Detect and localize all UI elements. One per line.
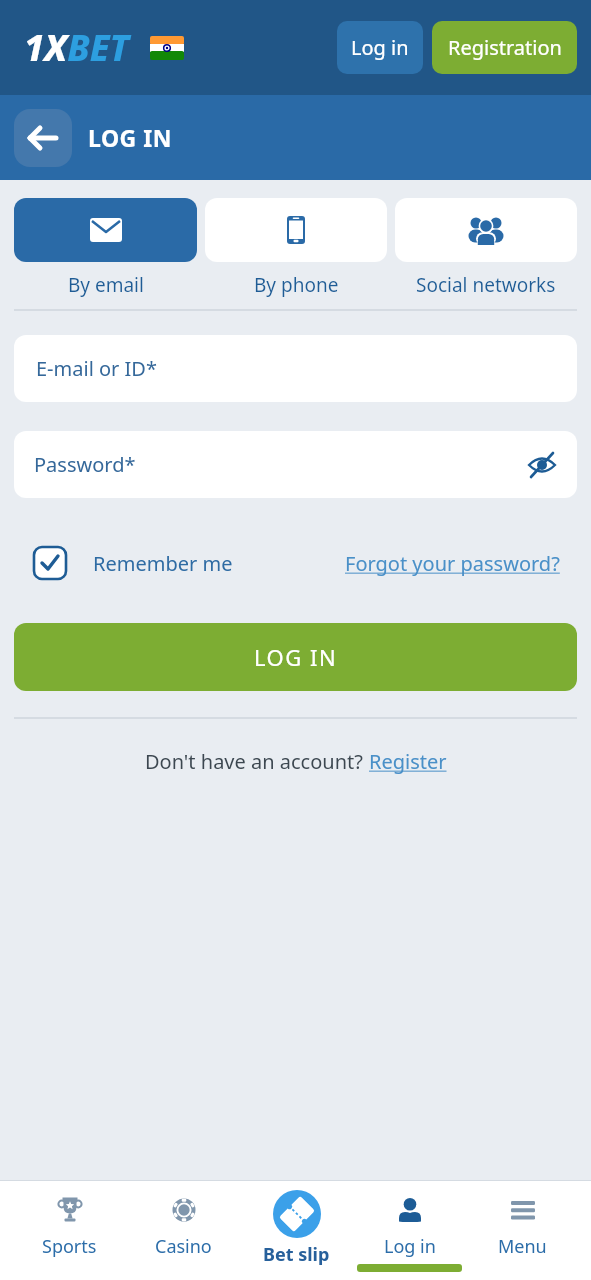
staticText: Log in: [351, 34, 409, 61]
staticText: Remember me: [93, 550, 233, 577]
staticText: Menu: [498, 1234, 547, 1259]
button[interactable]: [205, 198, 387, 262]
staticText: Password*: [34, 451, 136, 478]
button[interactable]: Forgot your password?: [345, 550, 560, 577]
button[interactable]: [395, 198, 577, 262]
staticText: LOG IN: [254, 642, 338, 672]
button[interactable]: [14, 109, 72, 167]
staticText: 1XBET: [24, 23, 130, 72]
button[interactable]: [34, 547, 66, 579]
button[interactable]: Log in: [353, 1180, 466, 1280]
staticText: Log in: [384, 1234, 436, 1259]
button[interactable]: LOG IN: [14, 623, 577, 691]
button[interactable]: Log in: [337, 21, 423, 74]
button[interactable]: Registration: [432, 21, 577, 74]
staticText: Don't have an account?: [145, 748, 369, 775]
staticText: E-mail or ID*: [36, 355, 157, 382]
staticText: Sports: [42, 1234, 97, 1259]
button[interactable]: Password*: [14, 431, 577, 498]
staticText: By phone: [254, 272, 339, 298]
button[interactable]: Bet slip: [240, 1180, 353, 1280]
button[interactable]: Register: [369, 748, 447, 775]
button[interactable]: Menu: [466, 1180, 579, 1280]
staticText: By email: [68, 272, 144, 298]
staticText: Social networks: [416, 272, 556, 298]
staticText: Casino: [155, 1234, 212, 1259]
button[interactable]: Sports: [12, 1180, 126, 1280]
staticText: Registration: [448, 34, 562, 61]
staticText: Bet slip: [263, 1242, 330, 1267]
button[interactable]: Casino: [126, 1180, 240, 1280]
button[interactable]: E-mail or ID*: [14, 335, 577, 402]
button[interactable]: [14, 198, 197, 262]
staticText: LOG IN: [88, 122, 172, 153]
